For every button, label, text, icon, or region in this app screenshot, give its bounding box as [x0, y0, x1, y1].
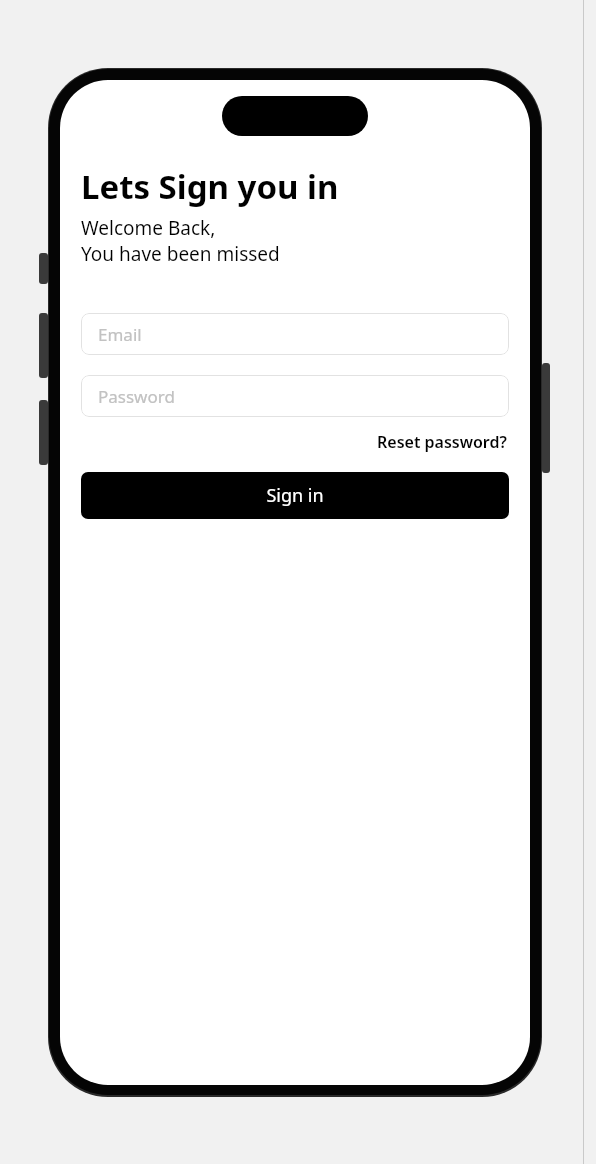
staticText: Welcome Back,	[81, 215, 216, 241]
button[interactable]: Password	[81, 375, 509, 417]
button[interactable]: Reset password?	[375, 429, 509, 455]
staticText: You have been missed	[81, 241, 280, 267]
staticText: Password	[98, 385, 175, 408]
staticText: Lets Sign you in	[81, 164, 339, 209]
button[interactable]: Email	[81, 313, 509, 355]
staticText: Sign in	[266, 483, 324, 508]
staticText: Reset password?	[377, 431, 507, 453]
staticText: Email	[98, 323, 142, 346]
button[interactable]: Sign in	[81, 472, 509, 519]
